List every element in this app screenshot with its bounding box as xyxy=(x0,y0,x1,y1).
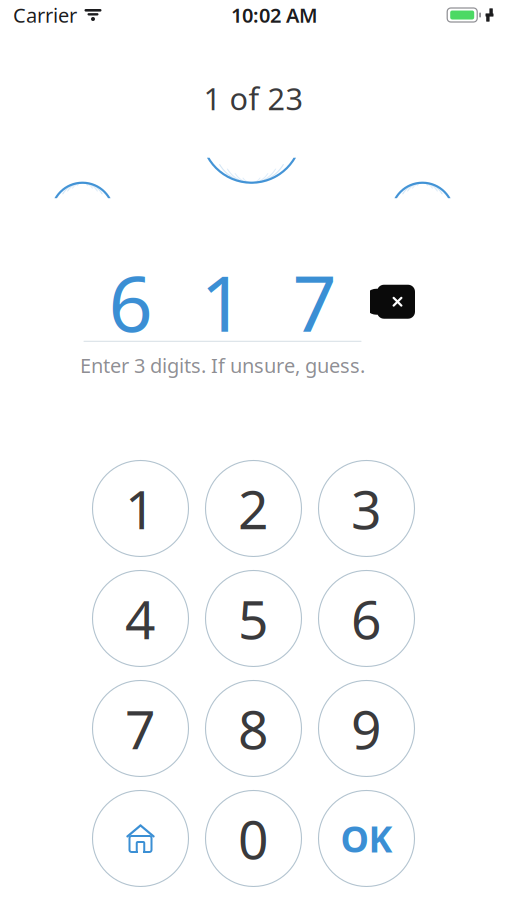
button[interactable]: 0 xyxy=(205,790,301,886)
staticText: 2 xyxy=(238,473,269,544)
button[interactable]: 9 xyxy=(318,680,414,776)
staticText: 1 of 23 xyxy=(203,78,303,119)
button[interactable]: 1 xyxy=(92,460,188,556)
staticText: Carrier xyxy=(13,2,77,28)
staticText: 7 xyxy=(125,693,156,764)
staticText: Enter 3 digits. If unsure, guess. xyxy=(80,352,365,378)
button[interactable]: 8 xyxy=(205,680,301,776)
staticText: 1 xyxy=(200,250,244,353)
staticText: 6 xyxy=(351,583,382,654)
button[interactable]: 4 xyxy=(92,570,188,666)
staticText: 0 xyxy=(238,803,269,874)
staticText: 6 xyxy=(108,250,152,353)
button[interactable]: Home xyxy=(92,790,188,886)
staticText: OK xyxy=(340,815,392,862)
button[interactable]: 7 xyxy=(92,680,188,776)
button[interactable]: 3 xyxy=(318,460,414,556)
staticText: 4 xyxy=(125,583,156,654)
staticText: 7 xyxy=(292,250,336,353)
button[interactable]: 6 xyxy=(318,570,414,666)
staticText: 8 xyxy=(238,693,269,764)
staticText: 10:02 AM xyxy=(231,2,318,28)
staticText: 1 xyxy=(125,473,156,544)
button[interactable]: OK xyxy=(318,790,414,886)
staticText: 5 xyxy=(238,583,269,654)
staticText: 9 xyxy=(351,693,382,764)
button[interactable]: 5 xyxy=(205,570,301,666)
button[interactable]: 2 xyxy=(205,460,301,556)
staticText: 3 xyxy=(351,473,382,544)
button[interactable]: Delete xyxy=(361,276,423,328)
